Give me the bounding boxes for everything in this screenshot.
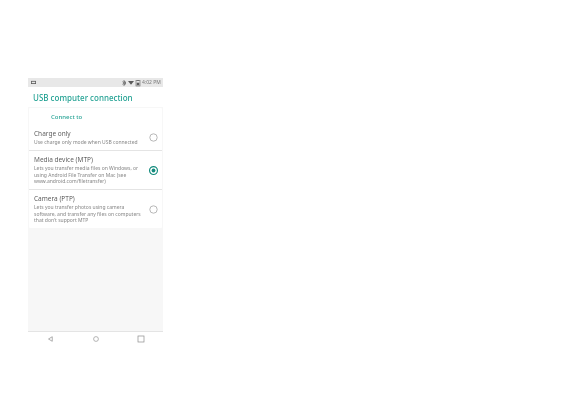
staticText: Lets you transfer photos using camera so…: [34, 204, 146, 224]
staticText: Media device (MTP): [34, 155, 93, 164]
button[interactable]: Home: [73, 331, 118, 346]
staticText: USB computer connection: [33, 92, 133, 103]
staticText: Use charge only mode when USB connected: [34, 139, 138, 146]
other: Option: [149, 205, 158, 214]
button[interactable]: Camera (PTP): [29, 190, 162, 228]
other: Selected option: [149, 166, 158, 175]
staticText: Lets you transfer media files on Windows…: [34, 165, 146, 185]
staticText: Camera (PTP): [34, 194, 75, 203]
button[interactable]: Charge only: [29, 125, 162, 150]
staticText: Connect to: [51, 113, 83, 121]
button[interactable]: Back: [28, 331, 73, 346]
button[interactable]: Media device (MTP): [29, 151, 162, 189]
button[interactable]: Recent apps: [118, 331, 163, 346]
staticText: 4:02 PM: [142, 79, 161, 86]
staticText: Charge only: [34, 129, 71, 138]
other: Option: [149, 133, 158, 142]
